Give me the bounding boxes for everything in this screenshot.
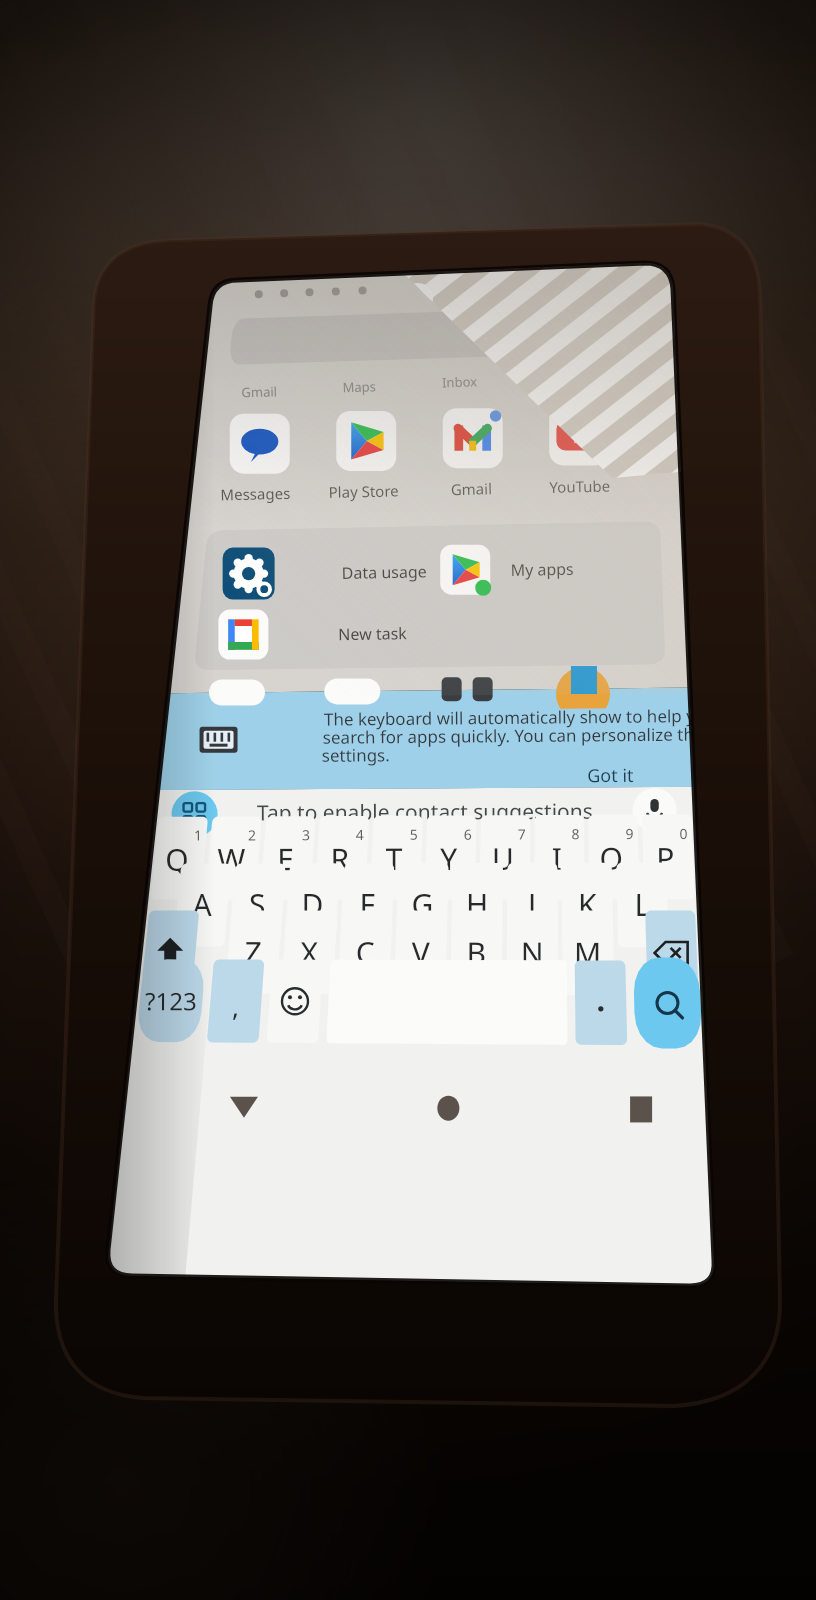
button[interactable]: Phone showing app drawer with keyboard (0, 0, 816, 1600)
